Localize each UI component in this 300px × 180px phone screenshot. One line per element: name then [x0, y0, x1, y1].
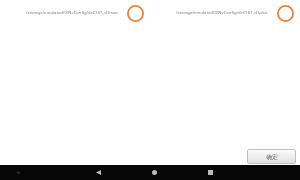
button[interactable]: Recent apps [201, 165, 219, 180]
button[interactable]: /storage/emulated/0/NvConfig/dcC161_d1ma… [0, 0, 150, 26]
button[interactable]: /storage/emulated/0/NvConfig/dcC161_d1pl… [150, 0, 300, 26]
staticText: 确定 [266, 153, 278, 161]
button[interactable]: 确定 [247, 149, 296, 164]
staticText: /storage/emulated/0/NvConfig/dcC161_d1pl… [176, 10, 268, 16]
staticText: /storage/emulated/0/NvConfig/dcC161_d1ma… [26, 10, 118, 16]
button[interactable]: Home [145, 165, 163, 180]
button[interactable]: Dismiss [0, 165, 36, 180]
button[interactable]: Back [89, 165, 107, 180]
